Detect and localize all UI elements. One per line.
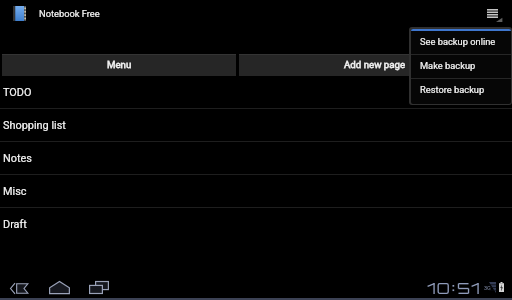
button[interactable]: TODO — [0, 76, 512, 109]
button[interactable]: Add new page — [239, 54, 510, 76]
button[interactable]: Menu — [2, 54, 236, 76]
button[interactable]: Notes — [0, 142, 512, 175]
button[interactable]: Make backup — [411, 55, 511, 78]
staticText: Menu — [107, 59, 132, 70]
staticText: Make backup — [420, 60, 476, 71]
button[interactable]: Back — [10, 283, 28, 294]
staticText: Shopping list — [3, 119, 66, 132]
button[interactable]: More options — [481, 2, 507, 26]
button[interactable]: Shopping list — [0, 109, 512, 142]
staticText: Notes — [3, 152, 32, 165]
staticText: Restore backup — [420, 84, 485, 95]
button[interactable]: Draft — [0, 208, 512, 241]
staticText: TODO — [3, 86, 32, 99]
staticText: See backup online — [420, 36, 496, 47]
staticText: Misc — [3, 185, 27, 198]
staticText: 3G — [484, 285, 491, 291]
staticText: Draft — [3, 218, 27, 231]
button[interactable]: Recent apps — [89, 281, 109, 294]
staticText: Add new page — [344, 59, 406, 70]
staticText: Notebook Free — [39, 8, 100, 19]
button[interactable]: Home — [49, 281, 70, 294]
button[interactable]: See backup online — [411, 31, 511, 54]
button[interactable]: Misc — [0, 175, 512, 208]
button[interactable]: Restore backup — [411, 79, 511, 102]
